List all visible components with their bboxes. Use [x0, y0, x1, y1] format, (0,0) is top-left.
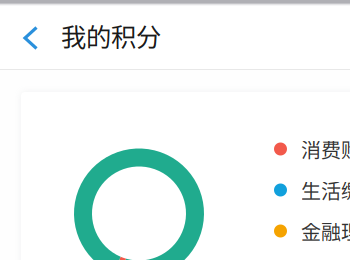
staticText: 消费购物 — [301, 134, 350, 163]
button[interactable]: Back — [19, 26, 43, 50]
staticText: 我的积分 — [61, 17, 161, 54]
staticText: 金融理财 — [301, 216, 350, 245]
staticText: 生活缴费 — [301, 175, 350, 204]
